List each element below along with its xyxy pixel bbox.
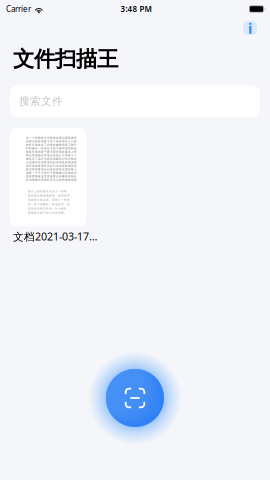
staticText: 阳光透过玻璃洒进来，房间里浮 <box>28 194 70 197</box>
staticText: 在一个安静的午后我坐在窗边看着窗外 <box>26 136 77 139</box>
button[interactable]: Scan document <box>83 346 187 450</box>
staticText: 3:48 PM <box>120 4 151 14</box>
staticText: 那是秋天留下的小纪念品啊。 <box>28 211 67 214</box>
staticText: 愿你我都被这世界温柔以待继续的前行 <box>26 175 77 178</box>
staticText: 文件扫描王 <box>13 46 118 72</box>
staticText: 页间还夹着去年的一片小树叶， <box>28 207 70 210</box>
staticText: 也许这就是成长学会与过去轻轻地告别 <box>26 164 77 167</box>
staticText: 匆忙忙地走过了街角的咖啡馆留下脚印 <box>26 143 77 146</box>
staticText: i <box>248 18 252 38</box>
staticText: 很多年前的那个夏天阳光洒在操场上呀 <box>26 150 77 153</box>
staticText: 窗台上的绿植又长高了一些呀， <box>28 190 70 193</box>
button[interactable]: Info <box>243 21 257 35</box>
staticText: 然后带着希望走向未知的明天那条路上 <box>26 168 77 171</box>
staticText: 文档2021-03-17 1… <box>13 229 99 243</box>
staticText: 愿每一个平凡的日子都能够闪闪地发光 <box>26 171 77 174</box>
staticText: Carrier <box>6 4 31 14</box>
staticText: 茶，坐下来翻开一本旧的书，纸 <box>28 203 70 206</box>
staticText: 的雨点轻轻地落下这个城市里的人们匆 <box>26 140 77 143</box>
staticText: 我们笑着跑过草地后来的日子里每个人 <box>26 154 77 157</box>
staticText: 都走向了远方但那些温暖的记忆仍留在 <box>26 157 77 160</box>
staticText: 在清晨微光里我听见鸟儿轻快地歌唱着 <box>26 178 77 181</box>
button[interactable]: 在一个安静的午后我坐在窗边看着窗外 <box>10 128 99 243</box>
staticText: 时间像水一样流过不曾为谁停留我想起 <box>26 147 77 150</box>
staticText: 心底偶尔在深夜里想起依然觉得很温柔 <box>26 161 77 164</box>
staticText: 搜索文件 <box>19 95 63 108</box>
staticText: 动着细小的尘埃。我泡了一杯热 <box>28 198 70 202</box>
